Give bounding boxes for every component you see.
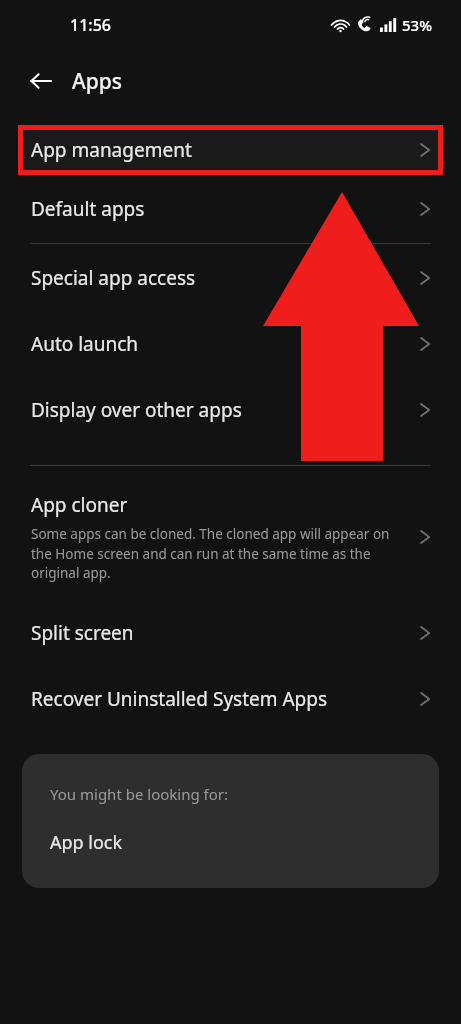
staticText: Split screen [31, 620, 134, 646]
button[interactable]: Special app access [0, 244, 461, 311]
staticText: Recover Uninstalled System Apps [31, 686, 328, 712]
staticText: Some apps can be cloned. The cloned app … [31, 525, 401, 582]
button[interactable]: App management [18, 125, 443, 175]
staticText: App cloner [31, 492, 128, 518]
staticText: You might be looking for: [50, 784, 229, 804]
staticText: Default apps [31, 196, 145, 222]
button[interactable]: You might be looking for: [22, 754, 439, 888]
button[interactable]: Auto launch [0, 311, 461, 377]
button[interactable]: Default apps [0, 175, 461, 243]
button[interactable]: Back [20, 60, 62, 102]
button[interactable]: Split screen [0, 600, 461, 666]
staticText: 53% [402, 15, 432, 35]
button[interactable]: Recover Uninstalled System Apps [0, 666, 461, 732]
staticText: 11:56 [70, 14, 111, 36]
staticText: Auto launch [31, 331, 139, 357]
staticText: Special app access [31, 265, 196, 291]
staticText: App management [31, 137, 192, 163]
button[interactable]: App cloner [0, 466, 461, 600]
staticText: App lock [50, 830, 123, 855]
staticText: Display over other apps [31, 397, 242, 423]
button[interactable]: Display over other apps [0, 377, 461, 443]
staticText: Apps [72, 67, 123, 96]
